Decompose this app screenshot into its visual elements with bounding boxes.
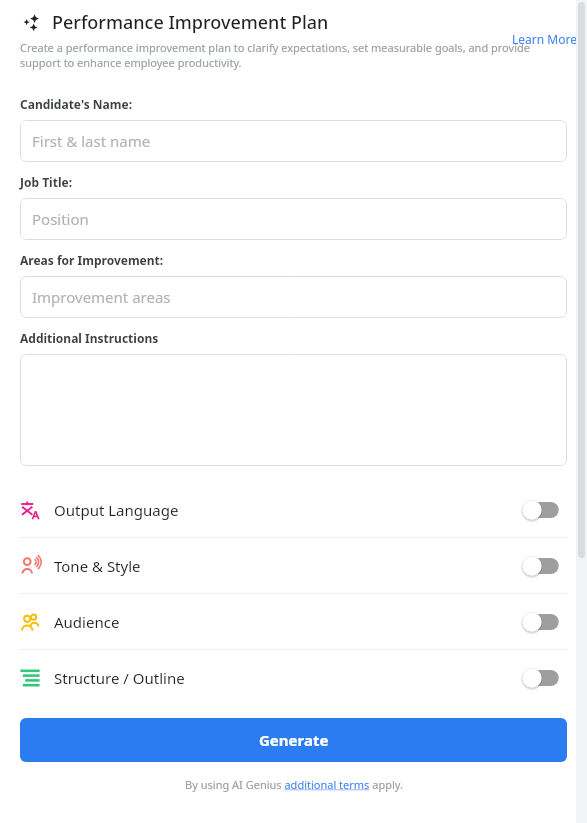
other: Output language <box>20 500 40 520</box>
other: Structure or outline <box>20 668 40 688</box>
other: Audience <box>20 612 40 632</box>
button[interactable] <box>20 354 567 466</box>
staticText: Create a performance improvement plan to… <box>20 40 567 70</box>
button[interactable]: Output language <box>0 482 587 537</box>
staticText: Tone & Style <box>54 556 141 576</box>
staticText: Additional Instructions <box>20 330 159 346</box>
button[interactable]: Tone and style <box>0 538 587 593</box>
button[interactable]: Toggle off <box>521 497 567 523</box>
staticText: Performance Improvement Plan <box>52 10 329 35</box>
button[interactable]: Toggle off <box>521 665 567 691</box>
staticText: By using AI Genius additional terms appl… <box>185 777 403 792</box>
staticText: Improvement areas <box>32 287 171 307</box>
button[interactable]: Toggle off <box>521 553 567 579</box>
button[interactable]: Toggle off <box>521 609 567 635</box>
button[interactable]: By using AI Genius additional terms appl… <box>181 776 407 793</box>
staticText: Generate <box>259 730 329 750</box>
staticText: Audience <box>54 612 120 632</box>
staticText: Candidate's Name: <box>20 96 133 112</box>
button[interactable]: First & last name <box>20 120 567 162</box>
other: AI sparkle <box>20 12 42 34</box>
staticText: Areas for Improvement: <box>20 252 164 268</box>
button[interactable]: Learn More <box>510 30 579 48</box>
staticText: First & last name <box>32 131 151 151</box>
staticText: Learn More <box>512 31 577 47</box>
staticText: Position <box>32 209 89 229</box>
button[interactable]: Generate <box>20 718 567 762</box>
staticText: Job Title: <box>20 174 73 190</box>
button[interactable]: Structure or outline <box>0 650 587 705</box>
button[interactable]: Audience <box>0 594 587 649</box>
staticText: Output Language <box>54 500 179 520</box>
staticText: Structure / Outline <box>54 668 185 688</box>
other: Tone and style <box>20 556 40 576</box>
button[interactable]: Position <box>20 198 567 240</box>
button[interactable]: Improvement areas <box>20 276 567 318</box>
